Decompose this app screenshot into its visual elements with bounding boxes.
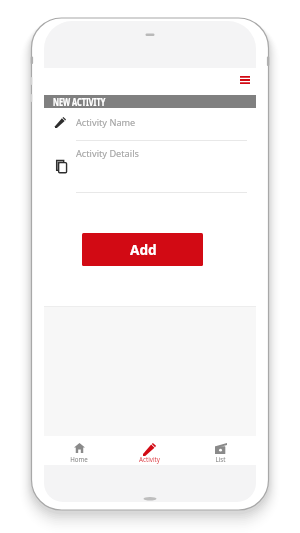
staticText: Activity Details — [76, 147, 139, 160]
button[interactable]: Activity Details — [44, 142, 256, 194]
staticText: Home — [70, 455, 88, 463]
staticText: NEW ACTIVITY — [53, 95, 106, 109]
staticText: List — [215, 455, 226, 463]
button[interactable]: Activity Name — [44, 108, 256, 141]
button[interactable]: Home — [44, 436, 114, 465]
staticText: Activity — [139, 455, 160, 463]
staticText: Add — [130, 240, 157, 259]
staticText: Activity Name — [76, 116, 136, 129]
button[interactable]: List — [185, 436, 256, 465]
button[interactable]: Add — [82, 233, 203, 266]
button[interactable]: Activity — [114, 436, 185, 465]
button[interactable]: Open navigation menu — [235, 70, 255, 90]
